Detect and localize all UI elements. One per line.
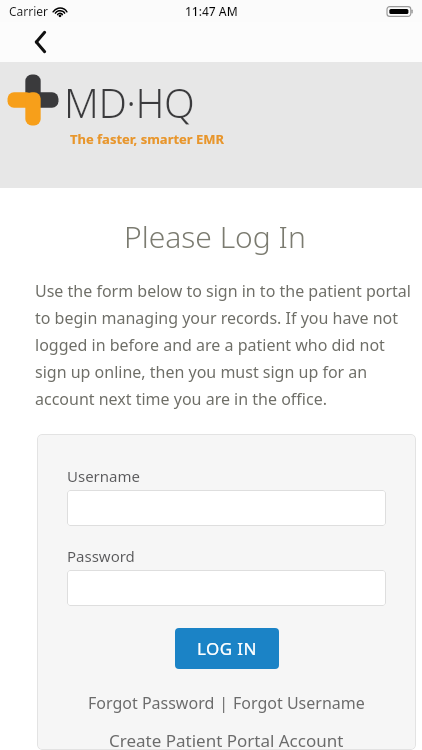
- staticText: Username: [67, 466, 140, 486]
- staticText: Carrier: [9, 3, 49, 19]
- button[interactable]: Create Patient Portal Account: [67, 729, 386, 750]
- button[interactable]: [67, 570, 386, 606]
- staticText: Forgot Password: [88, 692, 215, 714]
- staticText: Please Log In: [124, 216, 306, 257]
- button[interactable]: Back: [18, 22, 62, 62]
- staticText: MD·HQ: [64, 75, 195, 129]
- staticText: Use the form below to sign in to the pat…: [35, 280, 412, 410]
- staticText: Forgot Username: [233, 692, 365, 714]
- staticText: The faster, smarter EMR: [70, 130, 225, 148]
- button[interactable]: LOG IN: [175, 628, 279, 669]
- button[interactable]: Forgot Username: [233, 692, 365, 714]
- staticText: |: [215, 692, 233, 714]
- button[interactable]: [67, 490, 386, 526]
- staticText: Password: [67, 546, 135, 566]
- staticText: Create Patient Portal Account: [109, 729, 344, 750]
- button[interactable]: Forgot Password: [88, 692, 215, 714]
- staticText: LOG IN: [197, 637, 257, 660]
- staticText: 11:47 AM: [185, 3, 238, 19]
